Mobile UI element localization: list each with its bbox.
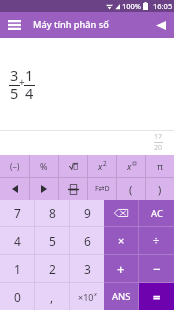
staticText: 5	[10, 83, 19, 103]
button[interactable]: 6	[70, 227, 104, 254]
staticText: 3	[10, 65, 19, 85]
button[interactable]: ANS	[104, 283, 138, 310]
staticText: %	[40, 160, 48, 172]
staticText: 3	[84, 261, 91, 277]
button[interactable]: π	[146, 155, 174, 177]
button[interactable]: 4	[0, 227, 34, 254]
button[interactable]: ,	[35, 283, 69, 310]
staticText: x	[94, 290, 97, 298]
staticText: )	[158, 182, 162, 197]
staticText: +	[117, 260, 125, 278]
staticText: −	[153, 260, 161, 278]
button[interactable]: Move cursor right	[30, 178, 58, 200]
staticText: AC	[151, 207, 163, 220]
button[interactable]: 1	[0, 255, 34, 282]
staticText: 1	[14, 261, 21, 277]
staticText: F⇄D	[95, 184, 110, 194]
staticText: (	[129, 182, 133, 197]
button[interactable]: 8	[35, 200, 69, 226]
button[interactable]: ÷	[139, 227, 174, 254]
staticText: 9	[84, 205, 91, 221]
button[interactable]: ×10	[70, 283, 104, 310]
button[interactable]: 5	[35, 227, 69, 254]
button[interactable]: 0	[0, 283, 34, 310]
staticText: 20	[154, 143, 163, 153]
button[interactable]: ×	[104, 227, 138, 254]
staticText: 5	[49, 233, 56, 249]
staticText: π	[157, 160, 163, 172]
staticText: 2	[103, 159, 107, 168]
staticText: 17	[154, 132, 163, 142]
staticText: =	[153, 288, 161, 306]
staticText: 6	[84, 233, 91, 249]
staticText: ANS	[112, 290, 131, 303]
button[interactable]: )	[146, 178, 174, 200]
staticText: 0	[14, 289, 21, 305]
button[interactable]: x	[88, 155, 116, 177]
staticText: (−)	[10, 161, 20, 172]
staticText: +	[19, 75, 25, 89]
button[interactable]: F⇄D	[88, 178, 116, 200]
staticText: 4	[25, 83, 34, 103]
staticText: ×	[118, 233, 125, 248]
staticText: 2	[49, 261, 56, 277]
staticText: 8	[49, 205, 56, 221]
button[interactable]: Back	[148, 12, 174, 38]
button[interactable]: −	[139, 255, 174, 282]
button[interactable]: +	[104, 255, 138, 282]
staticText: ×10	[78, 291, 94, 303]
button[interactable]: 9	[70, 200, 104, 226]
button[interactable]: Open navigation menu	[0, 12, 28, 38]
button[interactable]: =	[139, 283, 174, 310]
staticText: ÷	[153, 233, 160, 248]
staticText: 4	[14, 233, 21, 249]
button[interactable]: (	[117, 178, 145, 200]
button[interactable]: AC	[139, 200, 174, 226]
staticText: 1	[25, 65, 34, 85]
button[interactable]: x	[117, 155, 145, 177]
staticText: 7	[14, 205, 21, 221]
button[interactable]: 7	[0, 200, 34, 226]
staticText: 100%	[122, 1, 142, 11]
button[interactable]: %	[30, 155, 58, 177]
button[interactable]: 2	[35, 255, 69, 282]
staticText: ,	[50, 289, 54, 305]
staticText: x	[127, 160, 132, 172]
staticText: Máy tính phân số	[33, 18, 109, 31]
button[interactable]: 3	[70, 255, 104, 282]
staticText: 16:05	[153, 1, 173, 11]
button[interactable]: Backspace	[104, 200, 138, 226]
button[interactable]: Square root	[59, 155, 87, 177]
button[interactable]: (−)	[0, 155, 29, 177]
button[interactable]: Move cursor left	[0, 178, 29, 200]
staticText: x	[98, 160, 103, 172]
button[interactable]: Fraction template	[59, 178, 87, 200]
